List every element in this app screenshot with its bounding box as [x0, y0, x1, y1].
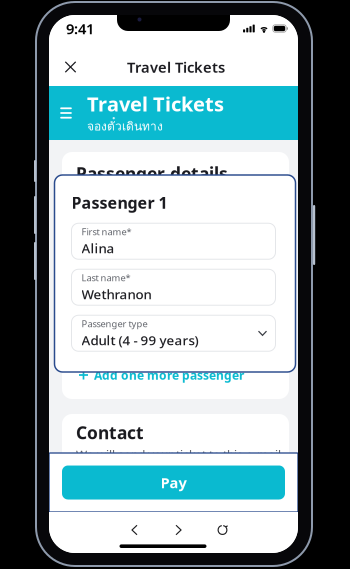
button[interactable]: Forward: [156, 518, 200, 542]
button[interactable]: Reload: [200, 518, 244, 542]
button[interactable]: Add one more passenger: [62, 363, 289, 387]
staticText: Add one more passenger: [94, 367, 244, 383]
button[interactable]: Passenger type: [71, 315, 275, 351]
staticText: จองตั๋วเดินทาง: [87, 117, 163, 136]
button[interactable]: Close: [56, 53, 84, 81]
staticText: Passenger details: [76, 162, 228, 185]
staticText: Alina: [81, 239, 114, 257]
staticText: 9:41: [66, 19, 94, 38]
button[interactable]: First name*: [71, 223, 275, 259]
staticText: Wethranon: [81, 285, 151, 303]
staticText: We will send your ticket to this e-mail: [76, 447, 281, 463]
staticText: Travel Tickets: [127, 57, 225, 77]
staticText: Pay: [160, 473, 186, 492]
staticText: Travel Tickets: [87, 90, 224, 117]
staticText: Adult (4 - 99 years): [81, 331, 198, 349]
staticText: Passenger type: [81, 317, 147, 330]
button[interactable]: Last name*: [71, 269, 275, 305]
staticText: Contact: [76, 421, 144, 444]
button[interactable]: Menu: [55, 102, 77, 124]
staticText: First name*: [81, 225, 131, 238]
staticText: Last name*: [81, 271, 130, 284]
staticText: Passenger 1: [71, 192, 167, 213]
button[interactable]: Pay: [62, 465, 285, 499]
button[interactable]: Back: [112, 518, 156, 542]
